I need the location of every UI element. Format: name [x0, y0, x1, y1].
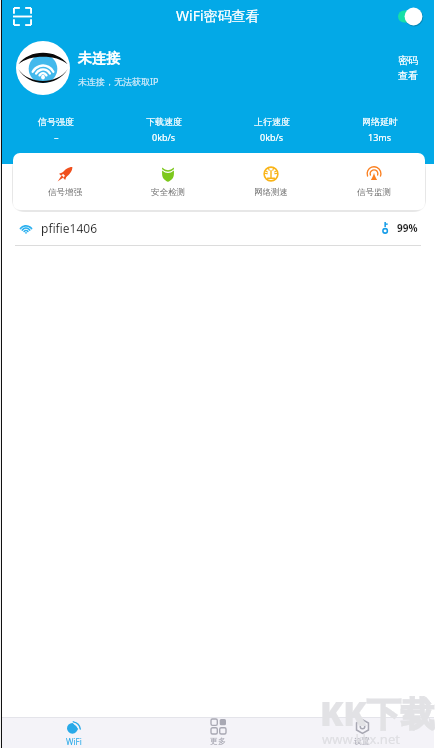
staticText: KK下载 — [320, 690, 435, 736]
button[interactable]: Scan QR code — [13, 7, 32, 26]
staticText: pfifie1406 — [41, 220, 98, 236]
staticText: 信号强度 — [38, 116, 74, 127]
staticText: – — [54, 131, 59, 143]
staticText: 未连接 — [78, 50, 120, 68]
staticText: 设置 — [354, 736, 370, 746]
button[interactable]: 信号增强 — [13, 153, 116, 210]
staticText: 13ms — [368, 131, 392, 143]
button[interactable]: 信号监测 — [322, 153, 425, 210]
staticText: 信号监测 — [357, 187, 391, 198]
staticText: 信号增强 — [48, 187, 82, 198]
staticText: 网络延时 — [362, 116, 398, 127]
button[interactable]: 密码 — [392, 50, 424, 86]
button[interactable]: 更多 — [146, 717, 290, 748]
staticText: 上行速度 — [254, 116, 290, 127]
staticText: 未连接，无法获取IP — [78, 75, 159, 87]
staticText: WiFi — [66, 736, 82, 747]
staticText: 99% — [397, 221, 418, 235]
button[interactable]: 网络测速 — [219, 153, 322, 210]
staticText: 查看 — [398, 69, 418, 82]
staticText: 0kb/s — [260, 131, 284, 143]
button[interactable]: WiFi — [2, 717, 146, 748]
button[interactable]: pfifie1406 — [2, 210, 434, 245]
staticText: 更多 — [210, 736, 226, 746]
staticText: WiFi密码查看 — [176, 6, 260, 25]
staticText: 密码 — [398, 54, 418, 67]
staticText: 安全检测 — [151, 187, 185, 198]
button[interactable]: 安全检测 — [116, 153, 219, 210]
staticText: www.kkx.net — [322, 730, 400, 748]
staticText: 0kb/s — [152, 131, 176, 143]
button[interactable]: 设置 — [290, 717, 434, 748]
button[interactable]: Toggle WiFi — [398, 7, 423, 26]
staticText: 下载速度 — [146, 116, 182, 127]
staticText: 网络测速 — [254, 187, 288, 198]
